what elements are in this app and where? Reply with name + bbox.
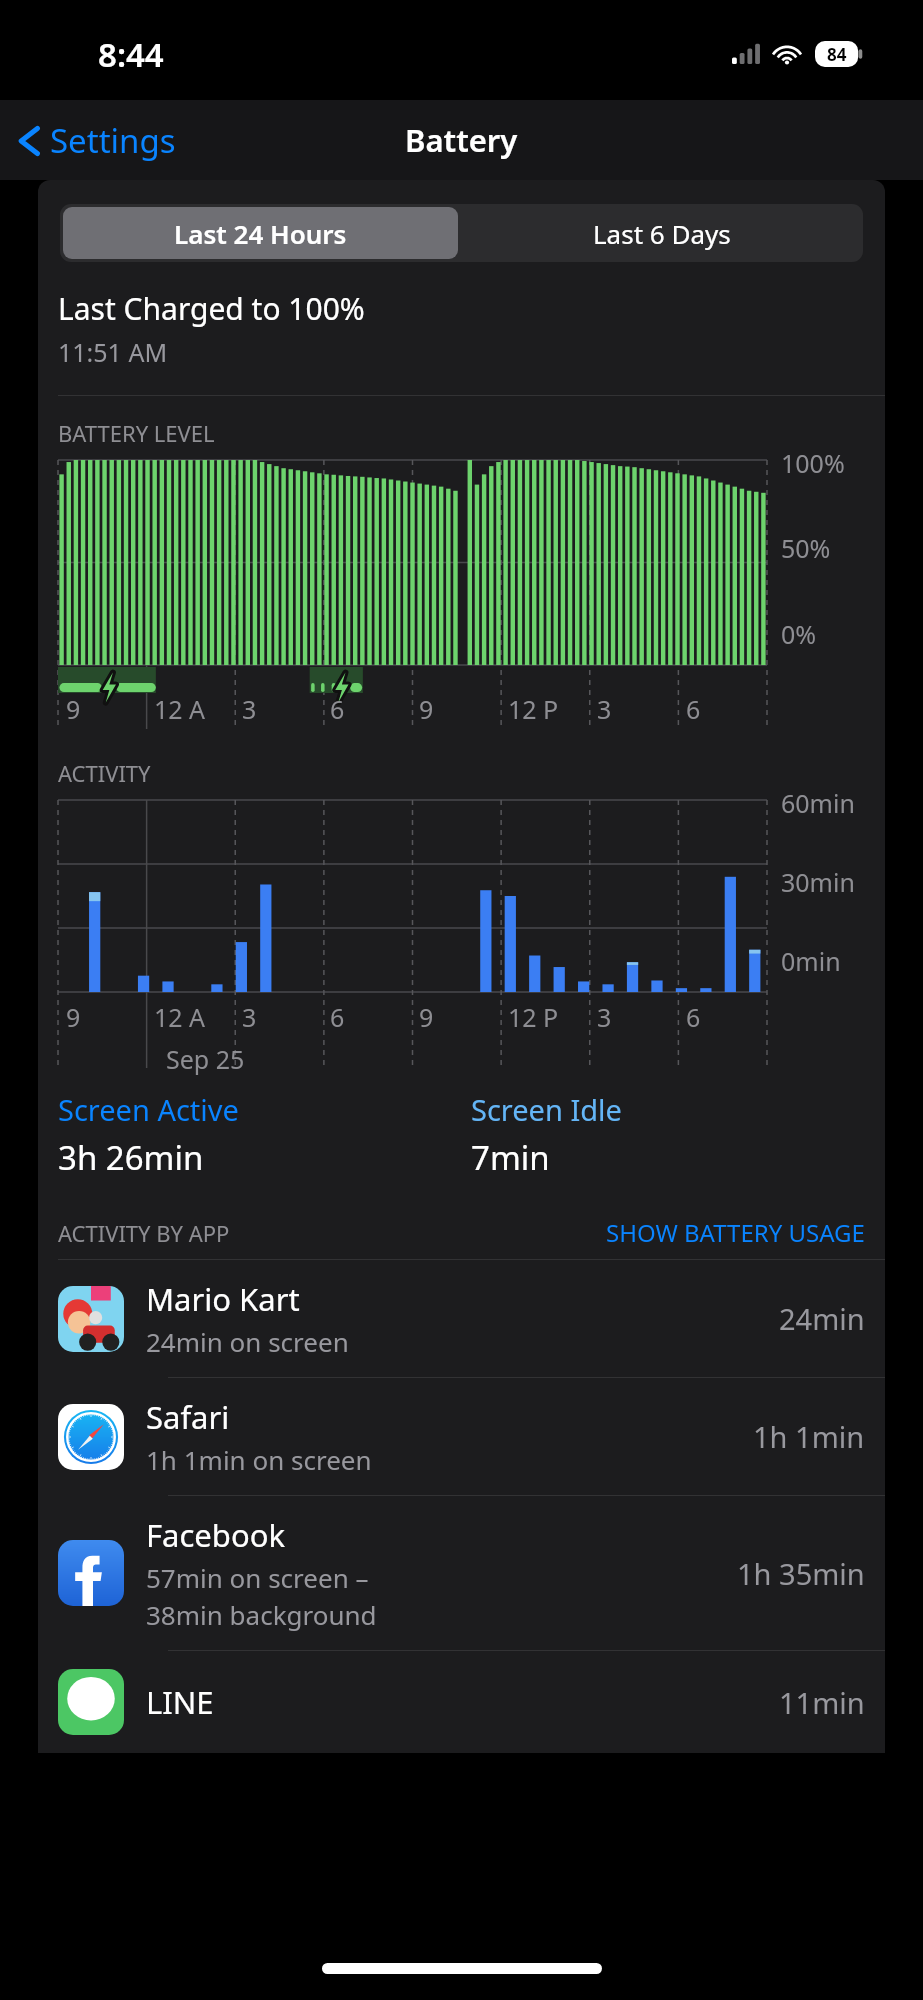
- staticText: Facebook: [146, 1514, 285, 1556]
- staticText: Last Charged to 100%: [58, 288, 365, 329]
- staticText: ACTIVITY: [58, 758, 151, 788]
- staticText: Screen Active: [58, 1090, 239, 1129]
- staticText: 1h 1min: [753, 1417, 865, 1456]
- button[interactable]: Mario Kart: [38, 1260, 885, 1377]
- staticText: LINE: [146, 1681, 214, 1723]
- staticText: Safari: [146, 1396, 230, 1438]
- staticText: 6: [686, 692, 701, 726]
- staticText: 1h 35min: [737, 1554, 865, 1593]
- staticText: 9: [419, 1000, 434, 1034]
- staticText: 30min: [781, 865, 855, 899]
- staticText: 11min: [779, 1683, 865, 1722]
- staticText: 6: [330, 692, 345, 726]
- button[interactable]: LINE: [38, 1651, 885, 1753]
- staticText: 60min: [781, 786, 855, 820]
- staticText: Sep 25: [166, 1042, 245, 1076]
- staticText: 8:44: [98, 32, 164, 77]
- staticText: 12 A: [154, 1000, 206, 1034]
- staticText: 84: [827, 43, 847, 66]
- staticText: Last 24 Hours: [174, 216, 347, 251]
- staticText: 12 P: [508, 1000, 559, 1034]
- staticText: 0min: [781, 944, 841, 978]
- button[interactable]: Facebook: [38, 1496, 885, 1650]
- staticText: 12 A: [154, 692, 206, 726]
- staticText: BATTERY LEVEL: [58, 418, 215, 448]
- staticText: 6: [686, 1000, 701, 1034]
- staticText: 0%: [781, 617, 817, 651]
- staticText: 6: [330, 1000, 345, 1034]
- staticText: Mario Kart: [146, 1278, 300, 1320]
- staticText: 3: [242, 1000, 257, 1034]
- staticText: Settings: [50, 118, 176, 163]
- staticText: 3: [242, 692, 257, 726]
- staticText: SHOW BATTERY USAGE: [606, 1216, 865, 1249]
- staticText: 11:51 AM: [58, 335, 168, 369]
- button[interactable]: Settings: [14, 118, 176, 163]
- staticText: 9: [66, 1000, 81, 1034]
- staticText: Screen Idle: [471, 1090, 622, 1129]
- staticText: 24min on screen: [146, 1324, 349, 1359]
- staticText: 3h 26min: [58, 1135, 204, 1180]
- staticText: 57min on screen –: [146, 1560, 369, 1595]
- staticText: ACTIVITY BY APP: [58, 1218, 230, 1248]
- button[interactable]: Last 24 Hours: [63, 207, 458, 259]
- button[interactable]: Safari: [38, 1378, 885, 1495]
- button[interactable]: SHOW BATTERY USAGE: [606, 1216, 865, 1249]
- button[interactable]: Last 6 Days: [461, 204, 863, 262]
- staticText: 100%: [781, 446, 845, 480]
- staticText: 1h 1min on screen: [146, 1442, 372, 1477]
- staticText: Last 6 Days: [593, 216, 731, 251]
- staticText: 9: [66, 692, 81, 726]
- staticText: 9: [419, 692, 434, 726]
- staticText: 38min background: [146, 1597, 377, 1632]
- staticText: 7min: [471, 1135, 550, 1180]
- staticText: 3: [597, 1000, 612, 1034]
- staticText: 24min: [779, 1299, 865, 1338]
- staticText: 50%: [781, 531, 831, 565]
- staticText: 3: [597, 692, 612, 726]
- staticText: Battery: [405, 119, 518, 161]
- staticText: 12 P: [508, 692, 559, 726]
